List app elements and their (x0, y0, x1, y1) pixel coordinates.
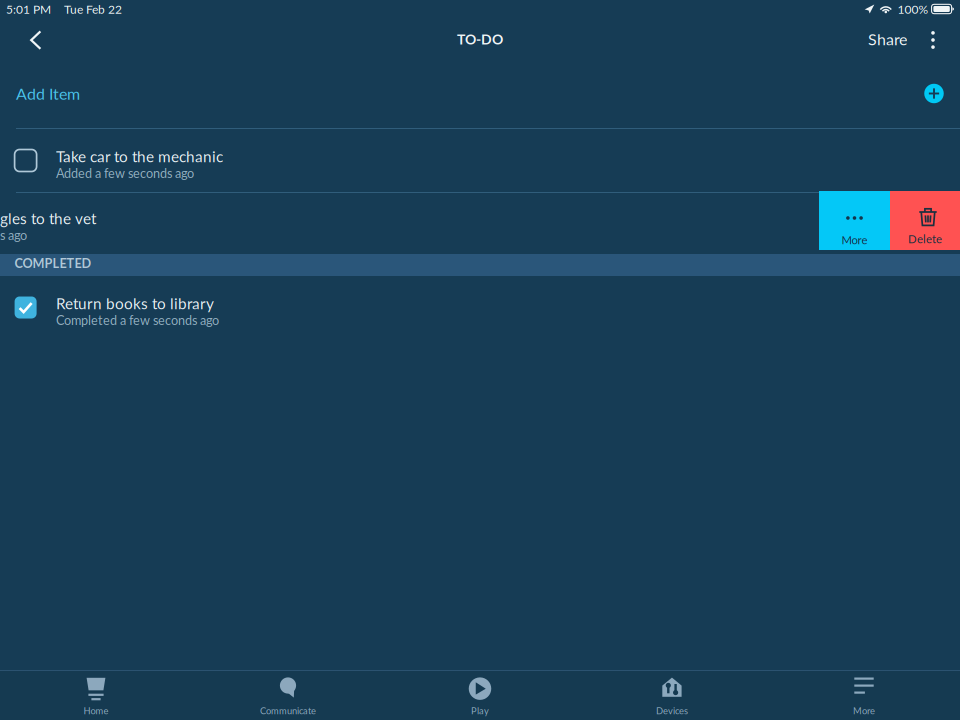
staticText: Completed a few seconds ago (56, 313, 219, 328)
staticText: Communicate (260, 705, 316, 716)
staticText: Return books to library (56, 294, 214, 313)
staticText: Home (83, 705, 108, 716)
button[interactable]: Add item (915, 74, 953, 112)
button[interactable]: Share (861, 19, 914, 59)
button[interactable]: Back (14, 20, 58, 60)
staticText: Take car to the mechanic (56, 147, 223, 166)
staticText: Add Item (16, 84, 80, 103)
button[interactable]: More options (914, 20, 952, 60)
button[interactable]: Mark as not done (0, 276, 56, 339)
staticText: COMPLETED (14, 255, 91, 271)
button[interactable]: Delete (890, 191, 960, 250)
button[interactable]: Add Item (14, 71, 82, 116)
staticText: s ago (0, 228, 27, 243)
staticText: More (853, 705, 875, 716)
staticText: TO-DO (457, 31, 503, 47)
staticText: More (841, 233, 867, 247)
staticText: Play (471, 705, 489, 716)
staticText: 100% (898, 2, 929, 16)
button[interactable]: Mark as done (0, 129, 56, 192)
staticText: Devices (656, 705, 688, 716)
button[interactable]: More (819, 191, 890, 250)
button[interactable]: Devices (576, 671, 768, 720)
button[interactable]: More (768, 671, 960, 720)
button[interactable]: Home (0, 671, 192, 720)
button[interactable]: Communicate (192, 671, 384, 720)
staticText: Delete (908, 232, 942, 246)
staticText: Share (868, 29, 907, 49)
staticText: Tue Feb 22 (64, 2, 122, 16)
staticText: 5:01 PM (6, 2, 51, 16)
button[interactable]: Play (384, 671, 576, 720)
staticText: Added a few seconds ago (56, 166, 194, 181)
staticText: gles to the vet (0, 209, 96, 228)
